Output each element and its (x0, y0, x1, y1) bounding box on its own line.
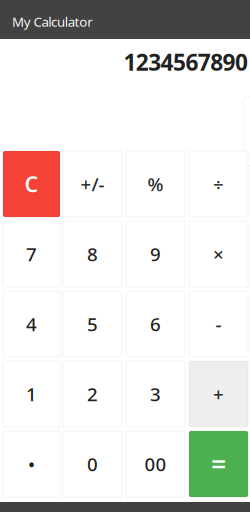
staticText: + (213, 382, 224, 406)
button[interactable]: Clear (3, 151, 60, 217)
button[interactable]: 8 (63, 221, 122, 287)
staticText: % (147, 172, 163, 196)
button[interactable]: 00 (126, 431, 185, 497)
staticText: 6 (150, 312, 161, 336)
button[interactable]: Divide (189, 151, 248, 217)
staticText: × (213, 242, 224, 266)
staticText: 00 (144, 452, 166, 476)
button[interactable]: Plus (189, 361, 248, 427)
button[interactable]: +/- (63, 151, 122, 217)
staticText: 4 (26, 312, 37, 336)
button[interactable]: Minus (189, 291, 248, 357)
button[interactable]: 2 (63, 361, 122, 427)
button[interactable]: % (126, 151, 185, 217)
staticText: 7 (26, 242, 37, 266)
staticText: 3 (150, 382, 161, 406)
button[interactable]: 5 (63, 291, 122, 357)
staticText: 8 (87, 242, 98, 266)
staticText: C (24, 170, 38, 198)
button[interactable]: 9 (126, 221, 185, 287)
staticText: - (215, 312, 221, 336)
button[interactable]: 7 (3, 221, 60, 287)
button[interactable]: 0 (63, 431, 122, 497)
button[interactable]: 1 (3, 361, 60, 427)
staticText: 1234567890 (123, 47, 248, 77)
staticText: = (211, 446, 226, 482)
staticText: ÷ (213, 172, 224, 196)
button[interactable]: Decimal point (3, 431, 60, 497)
staticText: • (28, 452, 35, 476)
staticText: 1 (26, 382, 37, 406)
button[interactable]: Multiply (189, 221, 248, 287)
staticText: +/- (80, 172, 104, 196)
staticText: My Calculator (12, 13, 93, 30)
staticText: 0 (87, 452, 98, 476)
staticText: 2 (87, 382, 98, 406)
staticText: 5 (87, 312, 98, 336)
button[interactable]: Equals (189, 431, 248, 497)
button[interactable]: 3 (126, 361, 185, 427)
button[interactable]: 4 (3, 291, 60, 357)
staticText: 9 (150, 242, 161, 266)
button[interactable]: 6 (126, 291, 185, 357)
